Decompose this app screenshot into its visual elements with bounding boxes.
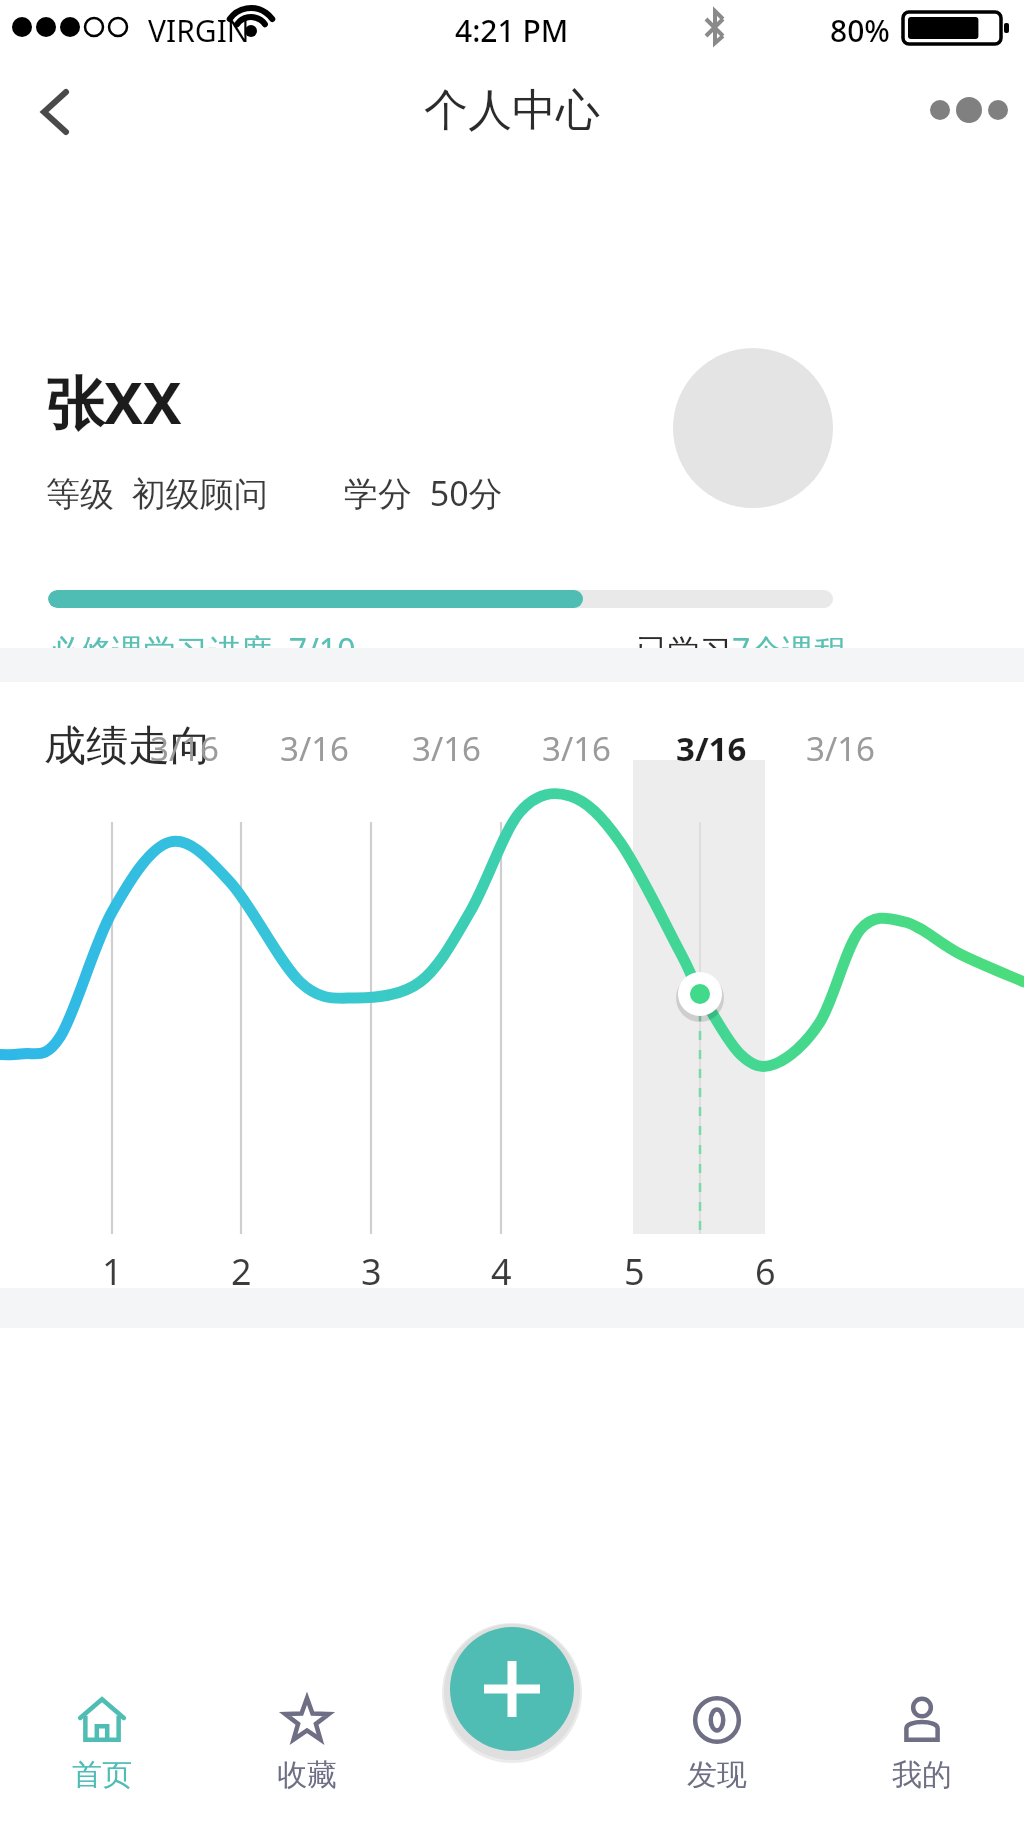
- staticText: VIRGIN: [148, 10, 250, 51]
- staticText: 80%: [830, 10, 890, 51]
- staticText: 我的: [892, 1756, 952, 1794]
- button[interactable]: Back: [0, 60, 100, 160]
- staticText: 3/16: [150, 726, 219, 771]
- staticText: 收藏: [277, 1756, 337, 1794]
- button[interactable]: Add: [442, 1619, 582, 1759]
- staticText: 3/16: [412, 726, 481, 771]
- staticText: 1: [102, 1247, 123, 1296]
- staticText: 3/16: [280, 726, 349, 771]
- staticText: 3: [361, 1247, 382, 1296]
- staticText: 个人中心: [424, 83, 600, 138]
- staticText: 首页: [72, 1756, 132, 1794]
- button[interactable]: More options: [914, 60, 1024, 160]
- staticText: 3/16: [676, 726, 747, 771]
- staticText: 等级 初级顾问: [46, 470, 268, 516]
- button[interactable]: Profile photo: [673, 348, 833, 508]
- button[interactable]: 发现: [614, 1678, 819, 1821]
- staticText: 已学习7个课程: [636, 628, 847, 672]
- button[interactable]: 首页: [0, 1678, 204, 1821]
- staticText: 张XX: [46, 362, 182, 441]
- button[interactable]: 收藏: [204, 1678, 409, 1821]
- button[interactable]: 我的: [819, 1678, 1024, 1821]
- staticText: 5: [624, 1247, 645, 1296]
- staticText: 必修课学习进度 7/10: [48, 628, 356, 672]
- staticText: 发现: [687, 1756, 747, 1794]
- staticText: 学分 50分: [344, 470, 503, 516]
- staticText: 4: [491, 1247, 512, 1296]
- staticText: 成绩走向: [44, 720, 212, 773]
- staticText: 4:21 PM: [455, 10, 569, 51]
- staticText: 3/16: [806, 726, 875, 771]
- staticText: 3/16: [542, 726, 611, 771]
- staticText: 6: [755, 1247, 776, 1296]
- staticText: 2: [231, 1247, 252, 1296]
